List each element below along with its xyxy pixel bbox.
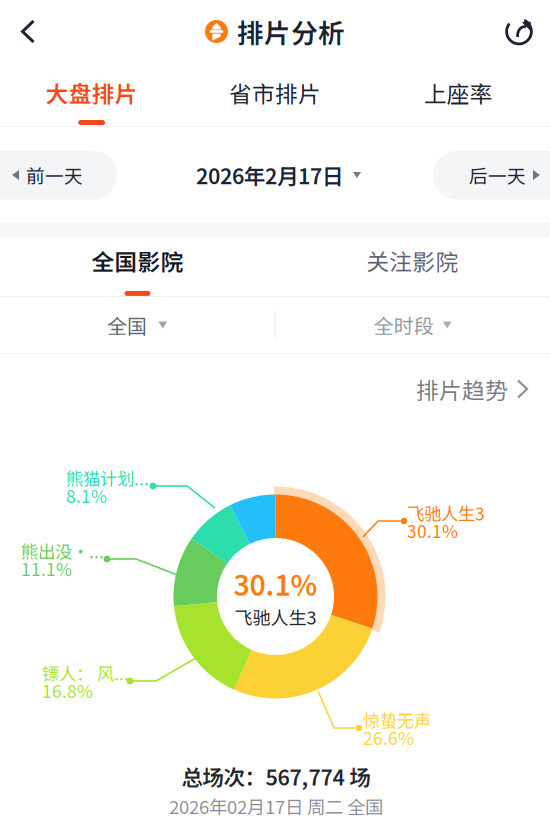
staticText: 前一天: [26, 161, 83, 188]
staticText: 上座率: [424, 76, 493, 109]
staticText: 飞驰人生3: [234, 604, 316, 630]
button[interactable]: 大盘排片: [0, 63, 183, 126]
staticText: 排片趋势: [416, 373, 508, 405]
staticText: 省市排片: [229, 76, 321, 109]
staticText: 全国: [107, 310, 147, 339]
button[interactable]: 全国: [0, 297, 274, 353]
button[interactable]: 前一天: [0, 150, 117, 199]
staticText: 镖人： 风...: [42, 660, 129, 686]
staticText: 排片分析: [237, 12, 345, 51]
button[interactable]: 全国影院: [0, 238, 275, 296]
staticText: 飞驰人生3: [407, 500, 485, 526]
button[interactable]: 排片趋势: [404, 365, 540, 413]
staticText: 30.1%: [233, 563, 317, 604]
button[interactable]: 上座率: [367, 63, 550, 126]
staticText: 关注影院: [366, 244, 458, 277]
staticText: 惊蛰无声: [363, 707, 431, 733]
staticText: 总场次：567,774 场: [181, 761, 370, 792]
button[interactable]: 后一天: [433, 150, 550, 199]
button[interactable]: 全时段: [275, 297, 550, 353]
button[interactable]: 省市排片: [183, 63, 367, 126]
staticText: 26.6%: [363, 725, 414, 750]
button[interactable]: Back: [0, 1, 56, 61]
staticText: 大盘排片: [46, 76, 138, 109]
staticText: 熊猫计划...: [66, 465, 149, 491]
staticText: 16.8%: [42, 678, 93, 703]
staticText: 8.1%: [66, 483, 107, 508]
staticText: 全时段: [374, 310, 434, 339]
button[interactable]: 关注影院: [275, 238, 550, 296]
button[interactable]: 2026年2月17日: [189, 160, 361, 190]
staticText: 全国影院: [91, 244, 183, 277]
staticText: 11.1%: [21, 556, 72, 581]
staticText: 2026年02月17日 周二 全国: [169, 793, 383, 819]
staticText: 后一天: [469, 161, 526, 188]
staticText: 2026年2月17日: [196, 160, 343, 190]
staticText: 熊出没·...: [21, 538, 104, 564]
staticText: 30.1%: [407, 518, 458, 543]
button[interactable]: Share: [488, 1, 550, 61]
